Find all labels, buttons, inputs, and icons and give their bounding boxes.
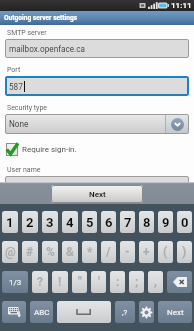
staticText: !: [58, 275, 62, 289]
staticText: 7: [124, 215, 132, 230]
button[interactable]: Switch keyboard: [2, 301, 26, 323]
button[interactable]: +: [139, 241, 154, 263]
button[interactable]: #: [22, 241, 38, 263]
button[interactable]: 0: [177, 211, 192, 233]
staticText: mailbox.openface.ca: [9, 44, 85, 54]
staticText: ): [182, 245, 187, 259]
button[interactable]: Settings: [139, 301, 154, 323]
button[interactable]: 8: [139, 211, 154, 233]
button[interactable]: Delete: [167, 271, 192, 293]
staticText: ?: [37, 275, 43, 289]
button[interactable]: 2: [22, 211, 38, 233]
staticText: ": [78, 275, 82, 289]
staticText: Port: [7, 66, 21, 74]
staticText: User name: [7, 166, 41, 174]
button[interactable]: &: [62, 241, 78, 263]
button[interactable]: @: [2, 241, 18, 263]
staticText: ,?: [122, 308, 128, 317]
button[interactable]: (: [158, 241, 173, 263]
button[interactable]: :: [110, 271, 125, 293]
staticText: (: [163, 245, 168, 259]
staticText: 3: [46, 215, 54, 230]
button[interactable]: ': [91, 271, 106, 293]
button[interactable]: None: [5, 114, 189, 134]
staticText: 1/3: [9, 278, 22, 287]
staticText: Next: [89, 190, 106, 199]
staticText: 6: [105, 215, 113, 230]
button[interactable]: -: [120, 241, 135, 263]
staticText: ': [98, 275, 100, 289]
staticText: &: [66, 245, 74, 259]
button[interactable]: 3: [42, 211, 58, 233]
button[interactable]: !: [52, 271, 68, 293]
button[interactable]: 7: [120, 211, 135, 233]
button[interactable]: 1: [2, 211, 18, 233]
staticText: :: [116, 275, 120, 289]
button[interactable]: Next: [158, 301, 192, 323]
button[interactable]: *: [82, 241, 97, 263]
staticText: 9: [162, 215, 170, 230]
button[interactable]: /: [101, 241, 116, 263]
staticText: Outgoing server settings: [4, 14, 78, 22]
button[interactable]: 587: [5, 76, 189, 96]
button[interactable]: Space: [57, 301, 111, 323]
button[interactable]: Require sign-in.: [6, 142, 77, 156]
staticText: 1: [6, 215, 14, 230]
button[interactable]: %: [42, 241, 58, 263]
staticText: ;: [135, 275, 139, 289]
staticText: Require sign-in.: [22, 145, 77, 154]
staticText: SMTP server: [7, 29, 47, 37]
staticText: None: [9, 119, 29, 129]
staticText: 587: [9, 82, 23, 92]
button[interactable]: ABC: [30, 301, 53, 323]
button[interactable]: Next: [51, 185, 143, 203]
button[interactable]: 4: [62, 211, 78, 233]
staticText: 11:11: [171, 1, 192, 10]
button[interactable]: 6: [101, 211, 116, 233]
button[interactable]: ;: [129, 271, 144, 293]
button[interactable]: 5: [82, 211, 97, 233]
staticText: 8: [143, 215, 151, 230]
staticText: %: [46, 245, 55, 259]
button[interactable]: ?: [32, 271, 48, 293]
button[interactable]: ,: [148, 271, 163, 293]
staticText: 2: [26, 215, 34, 230]
staticText: Next: [167, 308, 184, 317]
button[interactable]: [5, 176, 189, 195]
button[interactable]: 1/3: [2, 271, 28, 293]
staticText: @: [5, 245, 16, 259]
button[interactable]: ": [72, 271, 87, 293]
staticText: Security type: [7, 104, 48, 112]
staticText: *: [87, 245, 93, 259]
staticText: ABC: [34, 308, 50, 317]
staticText: 4: [66, 215, 74, 230]
staticText: /: [106, 245, 111, 259]
button[interactable]: mailbox.openface.ca: [5, 39, 189, 58]
staticText: -: [125, 245, 130, 259]
staticText: ,: [154, 275, 157, 289]
button[interactable]: 9: [158, 211, 173, 233]
staticText: 5: [86, 215, 94, 230]
button[interactable]: ,?: [115, 301, 135, 323]
staticText: #: [26, 245, 34, 259]
staticText: +: [143, 245, 150, 259]
button[interactable]: ): [177, 241, 192, 263]
staticText: 0: [181, 215, 189, 230]
